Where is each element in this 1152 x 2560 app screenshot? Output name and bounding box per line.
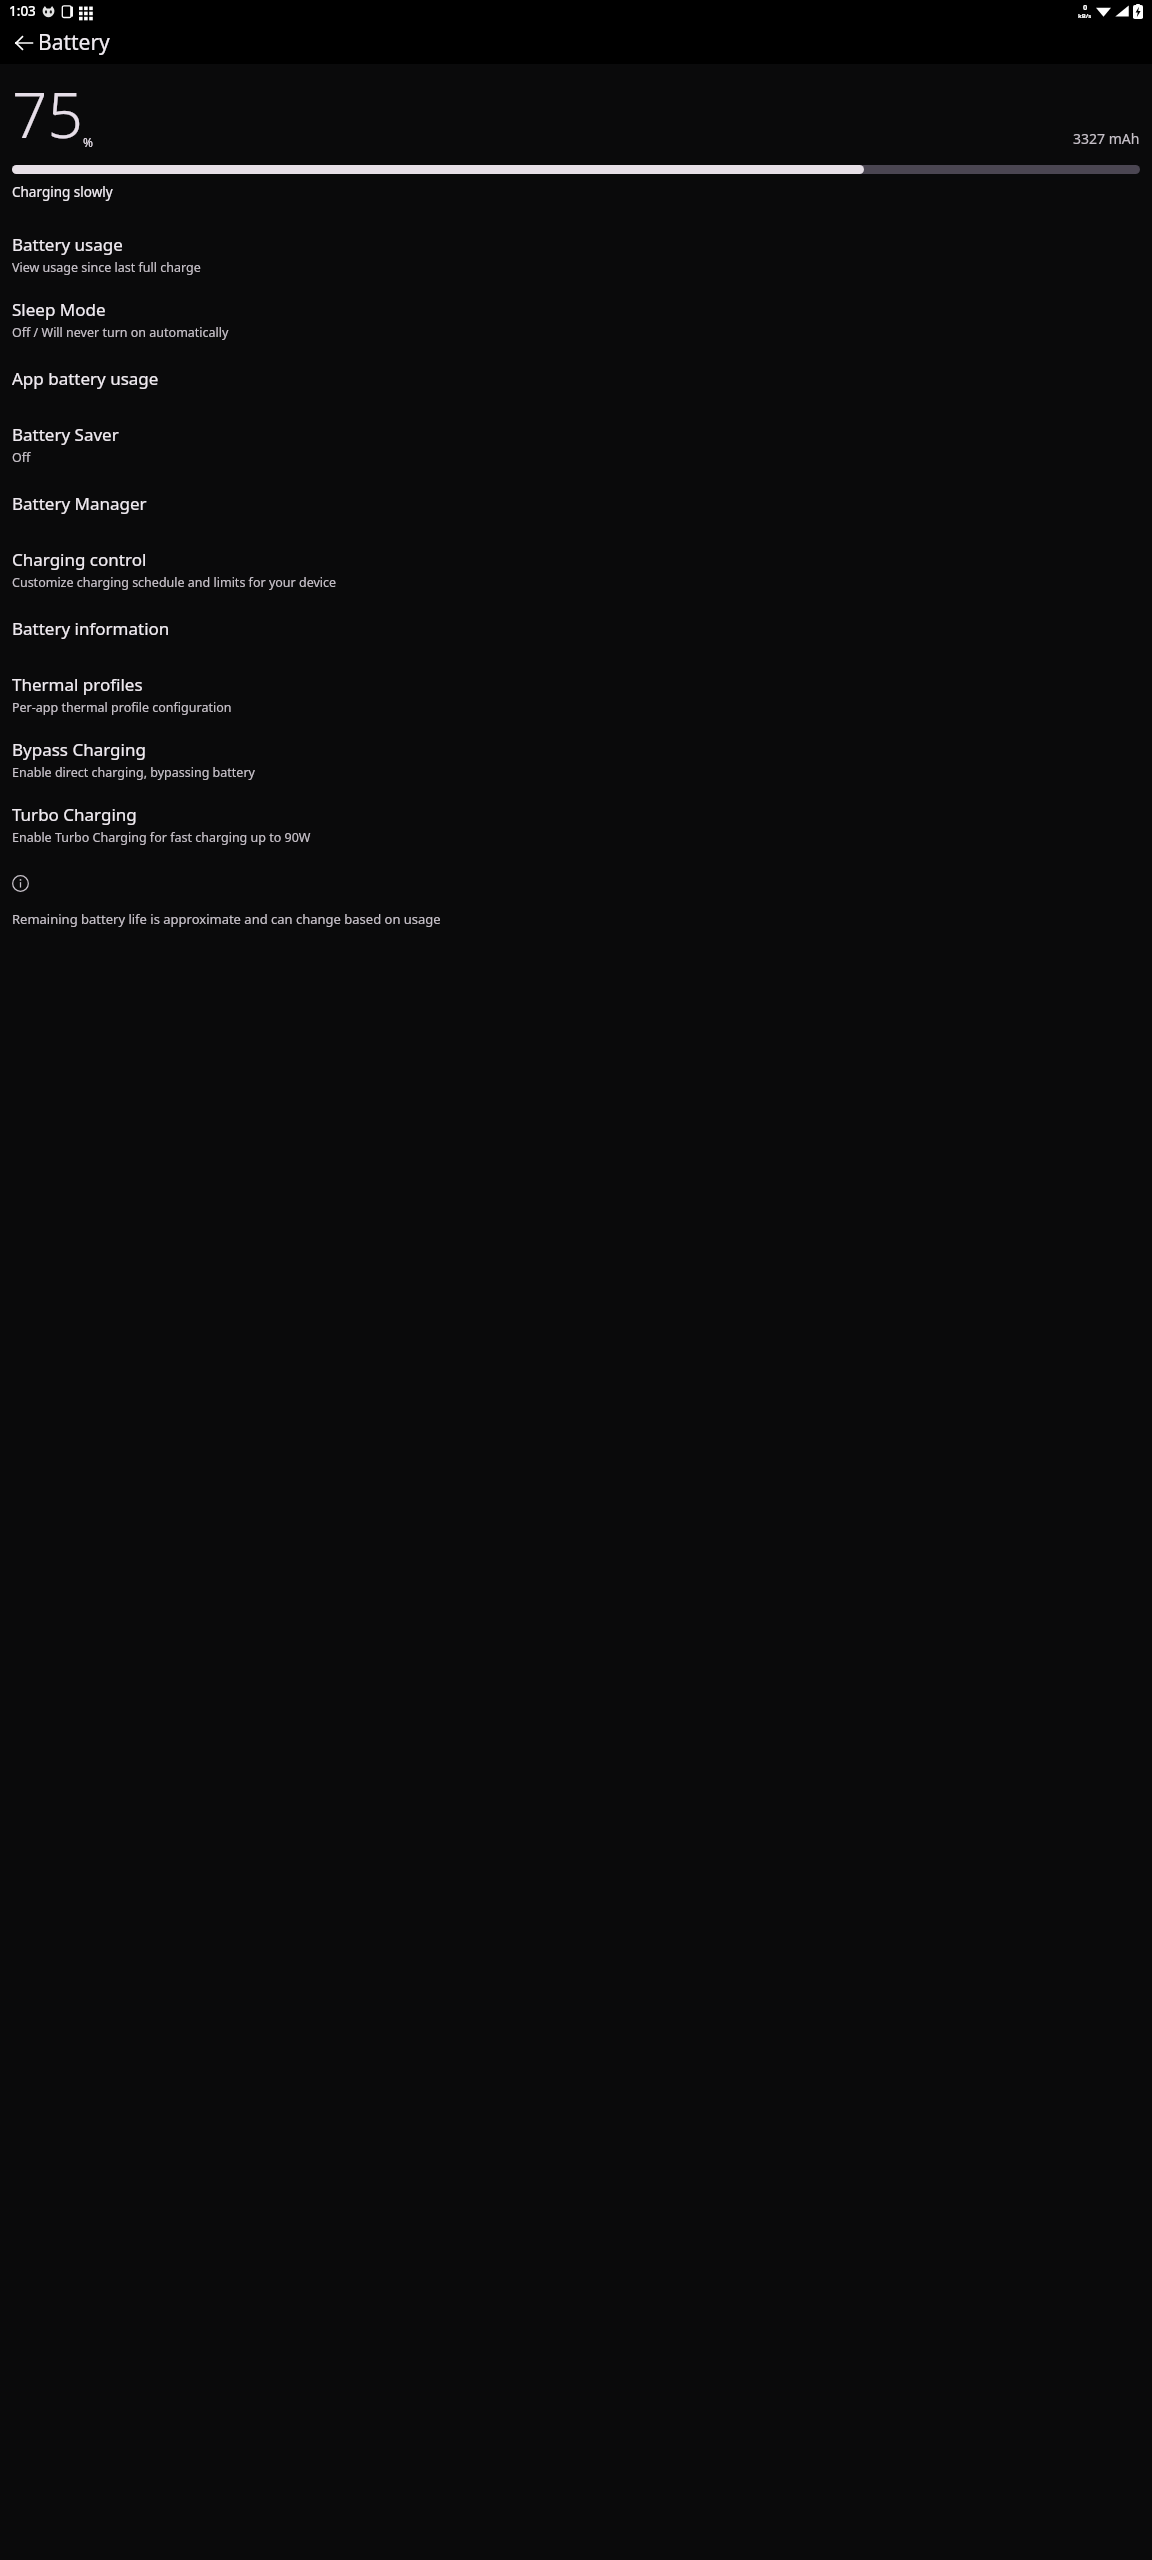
staticText: Battery usage bbox=[12, 233, 123, 256]
button[interactable]: Charging control bbox=[0, 537, 1152, 602]
staticText: % bbox=[83, 134, 93, 150]
staticText: 1:03 bbox=[9, 2, 36, 20]
staticText: Remaining battery life is approximate an… bbox=[12, 910, 441, 928]
staticText: Battery Manager bbox=[12, 492, 147, 515]
staticText: Sleep Mode bbox=[12, 298, 106, 321]
staticText: Battery information bbox=[12, 617, 170, 640]
button[interactable]: App battery usage bbox=[0, 352, 1152, 412]
staticText: Off bbox=[12, 449, 31, 466]
staticText: Turbo Charging bbox=[12, 803, 137, 826]
staticText: Customize charging schedule and limits f… bbox=[12, 574, 337, 591]
staticText: Bypass Charging bbox=[12, 738, 146, 761]
staticText: Charging control bbox=[12, 548, 147, 571]
staticText: Charging slowly bbox=[12, 183, 113, 201]
staticText: Battery bbox=[38, 28, 110, 57]
button[interactable]: Battery usage bbox=[0, 222, 1152, 287]
staticText: 75 bbox=[12, 72, 83, 156]
staticText: Per-app thermal profile configuration bbox=[12, 699, 232, 716]
button[interactable]: Battery Manager bbox=[0, 477, 1152, 537]
staticText: 0 bbox=[1083, 2, 1088, 12]
button[interactable]: Back bbox=[4, 23, 44, 63]
staticText: Thermal profiles bbox=[12, 673, 143, 696]
staticText: App battery usage bbox=[12, 367, 159, 390]
button[interactable]: Bypass Charging bbox=[0, 727, 1152, 792]
staticText: 3327 mAh bbox=[1073, 129, 1140, 148]
staticText: Enable direct charging, bypassing batter… bbox=[12, 764, 255, 781]
staticText: Battery Saver bbox=[12, 423, 119, 446]
button[interactable]: Sleep Mode bbox=[0, 287, 1152, 352]
staticText: kB/s bbox=[1078, 12, 1092, 20]
button[interactable]: Turbo Charging bbox=[0, 792, 1152, 857]
button[interactable]: Battery information bbox=[0, 602, 1152, 662]
button[interactable]: Thermal profiles bbox=[0, 662, 1152, 727]
button[interactable]: Battery Saver bbox=[0, 412, 1152, 477]
staticText: View usage since last full charge bbox=[12, 259, 201, 276]
staticText: Off / Will never turn on automatically bbox=[12, 324, 229, 341]
staticText: Enable Turbo Charging for fast charging … bbox=[12, 829, 311, 846]
